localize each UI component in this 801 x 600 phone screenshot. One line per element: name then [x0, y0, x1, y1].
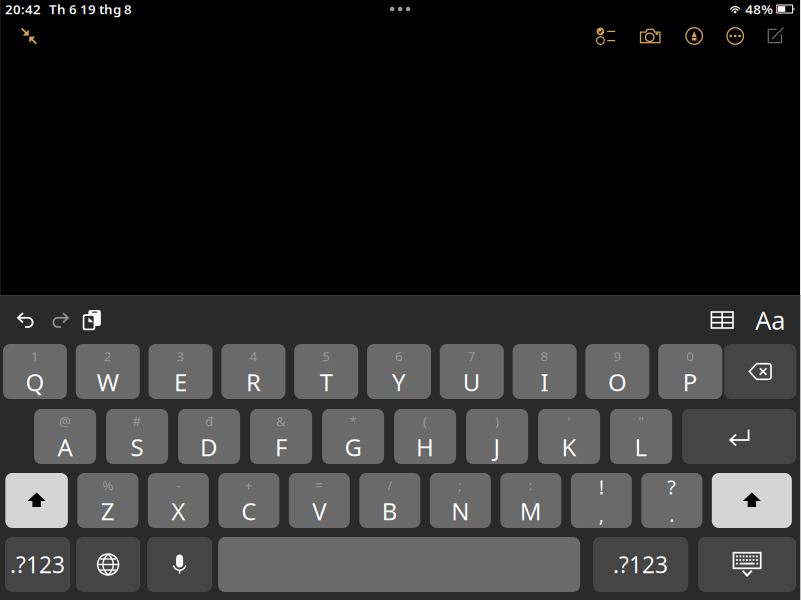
staticText: 6 — [395, 347, 403, 365]
staticText: 0 — [686, 347, 694, 365]
staticText: G — [345, 431, 362, 463]
button[interactable]: / — [359, 473, 420, 528]
button[interactable]: @ — [34, 409, 96, 464]
staticText: B — [382, 495, 398, 527]
button[interactable]: 3 — [149, 344, 213, 399]
button[interactable]: 9 — [585, 344, 649, 399]
staticText: . — [669, 501, 674, 528]
button[interactable]: Paste — [78, 306, 106, 334]
staticText: 48% — [745, 0, 773, 18]
staticText: ! — [599, 473, 604, 500]
staticText: 7 — [468, 347, 476, 365]
staticText: E — [174, 366, 187, 398]
button[interactable]: 1 — [3, 344, 67, 399]
staticText: # — [133, 412, 142, 430]
button[interactable]: " — [610, 409, 672, 464]
button[interactable]: 5 — [294, 344, 358, 399]
button[interactable]: More — [718, 21, 752, 51]
button[interactable]: Insert table — [707, 306, 737, 334]
staticText: K — [562, 431, 577, 463]
staticText: L — [635, 431, 648, 463]
staticText: ) — [495, 412, 499, 430]
staticText: / — [387, 476, 392, 494]
button[interactable]: 6 — [367, 344, 431, 399]
button[interactable]: Hide keyboard — [698, 537, 796, 592]
staticText: C — [241, 495, 256, 527]
staticText: Th 6 19 thg 8 — [49, 0, 132, 18]
staticText: D — [200, 431, 218, 463]
button[interactable]: ' — [538, 409, 600, 464]
staticText: .?123 — [613, 549, 668, 579]
staticText: .?123 — [10, 549, 65, 579]
staticText: T — [320, 366, 333, 398]
button[interactable]: ) — [466, 409, 528, 464]
button[interactable]: Return — [682, 409, 796, 464]
button[interactable]: + — [218, 473, 279, 528]
button[interactable]: ? — [641, 473, 702, 528]
button[interactable]: Text formatting — [755, 306, 785, 334]
staticText: J — [494, 431, 501, 463]
staticText: Y — [392, 366, 406, 398]
staticText: 8 — [541, 347, 549, 365]
button[interactable]: 4 — [221, 344, 285, 399]
button[interactable]: Checklist — [589, 21, 623, 51]
staticText: + — [245, 476, 253, 494]
staticText: O — [608, 366, 627, 398]
staticText: 2 — [104, 347, 112, 365]
staticText: R — [246, 366, 261, 398]
button[interactable]: New note — [760, 21, 791, 51]
button[interactable]: - — [148, 473, 209, 528]
staticText: W — [97, 366, 119, 398]
staticText: A — [58, 431, 73, 463]
button[interactable]: Dictation — [147, 537, 212, 592]
button[interactable]: : — [500, 473, 561, 528]
staticText: 3 — [177, 347, 185, 365]
staticText: S — [131, 431, 144, 463]
button[interactable]: Delete — [724, 344, 796, 399]
staticText: N — [451, 495, 469, 527]
button[interactable]: Camera — [633, 21, 667, 51]
button[interactable]: đ — [178, 409, 240, 464]
staticText: 20:42 — [5, 0, 41, 18]
staticText: M — [520, 495, 542, 527]
button[interactable]: Undo — [13, 306, 41, 334]
staticText: U — [463, 366, 481, 398]
button[interactable]: 7 — [440, 344, 504, 399]
button[interactable]: ; — [430, 473, 491, 528]
staticText: " — [639, 412, 644, 430]
button[interactable]: * — [322, 409, 384, 464]
staticText: 5 — [322, 347, 330, 365]
staticText: đ — [205, 412, 213, 430]
button[interactable]: Redo — [45, 306, 73, 334]
staticText: = — [315, 476, 323, 494]
button[interactable]: .?123 — [5, 537, 70, 592]
button[interactable]: = — [289, 473, 350, 528]
staticText: I — [541, 366, 549, 398]
button[interactable]: Collapse sidebar — [15, 22, 43, 50]
button[interactable]: 2 — [76, 344, 140, 399]
staticText: X — [171, 495, 185, 527]
button[interactable]: .?123 — [593, 537, 688, 592]
button[interactable]: ( — [394, 409, 456, 464]
staticText: ' — [568, 412, 571, 430]
staticText: P — [683, 366, 698, 398]
staticText: F — [275, 431, 287, 463]
button[interactable]: & — [250, 409, 312, 464]
button[interactable]: 0 — [658, 344, 722, 399]
staticText: V — [312, 495, 326, 527]
staticText: ? — [667, 473, 676, 500]
staticText: - — [176, 476, 180, 494]
button[interactable]: Shift — [712, 473, 792, 528]
staticText: 1 — [31, 347, 39, 365]
button[interactable]: Next keyboard — [76, 537, 140, 592]
staticText: , — [599, 501, 604, 528]
button[interactable]: % — [77, 473, 138, 528]
button[interactable]: 8 — [513, 344, 577, 399]
button[interactable]: Shift — [5, 473, 68, 528]
button[interactable]: ! — [571, 473, 632, 528]
button[interactable]: # — [106, 409, 168, 464]
button[interactable]: Markup — [677, 21, 711, 51]
staticText: H — [416, 431, 434, 463]
staticText: & — [276, 412, 286, 430]
